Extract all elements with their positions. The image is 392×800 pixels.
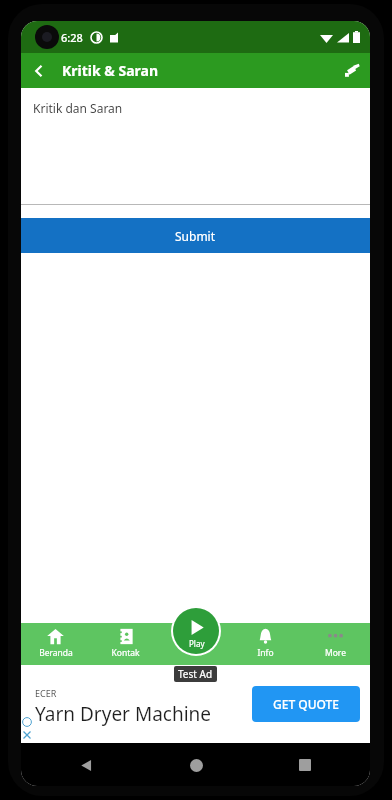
button[interactable]: Beranda (21, 623, 90, 665)
staticText: Yarn Dryer Machine (35, 701, 212, 727)
button[interactable]: Theme (335, 53, 370, 88)
staticText: Beranda (39, 647, 73, 659)
staticText: 6:28 (61, 30, 83, 45)
button[interactable]: Kritik dan Saran (21, 88, 370, 204)
staticText: ECER (35, 687, 57, 699)
button[interactable]: GET QUOTE (252, 686, 360, 722)
staticText: GET QUOTE (273, 696, 340, 712)
staticText: Kontak (111, 647, 140, 659)
button[interactable]: Kontak (90, 623, 160, 665)
staticText: Kritik dan Saran (33, 100, 123, 116)
staticText: Submit (175, 228, 216, 244)
button[interactable]: Play (173, 608, 219, 654)
button[interactable]: Back (73, 752, 99, 778)
staticText: Info (257, 647, 274, 659)
button[interactable]: Recents (292, 752, 318, 778)
button[interactable]: Home (183, 752, 209, 778)
staticText: Kritik & Saran (62, 61, 159, 80)
button[interactable]: Submit (21, 218, 370, 253)
staticText: More (325, 647, 346, 659)
button[interactable]: More (300, 623, 370, 665)
button[interactable]: Back (21, 53, 56, 88)
button[interactable]: Info (230, 623, 300, 665)
staticText: Test Ad (178, 667, 213, 681)
staticText: Play (189, 638, 205, 649)
